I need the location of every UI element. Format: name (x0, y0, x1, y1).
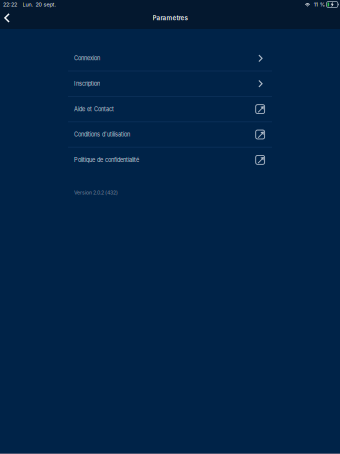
button[interactable]: Conditions d'utilisation (68, 122, 272, 148)
button[interactable]: Back (0, 9, 14, 27)
staticText: Connexion (74, 55, 100, 62)
button[interactable]: Connexion (68, 46, 272, 71)
button[interactable]: Politique de confidentialité (68, 148, 272, 173)
staticText: 22:22 (3, 1, 17, 8)
staticText: Politique de confidentialité (74, 156, 139, 163)
staticText: 11 % (314, 1, 325, 8)
staticText: Paramètres (152, 14, 187, 22)
staticText: Version 2.0.2 (432) (74, 189, 118, 196)
staticText: Inscription (74, 80, 100, 87)
button[interactable]: Inscription (68, 71, 272, 97)
button[interactable]: Aide et Contact (68, 97, 272, 122)
staticText: Conditions d'utilisation (74, 131, 130, 138)
staticText: Aide et Contact (74, 106, 114, 112)
staticText: Lun. 20 sept. (22, 1, 56, 8)
